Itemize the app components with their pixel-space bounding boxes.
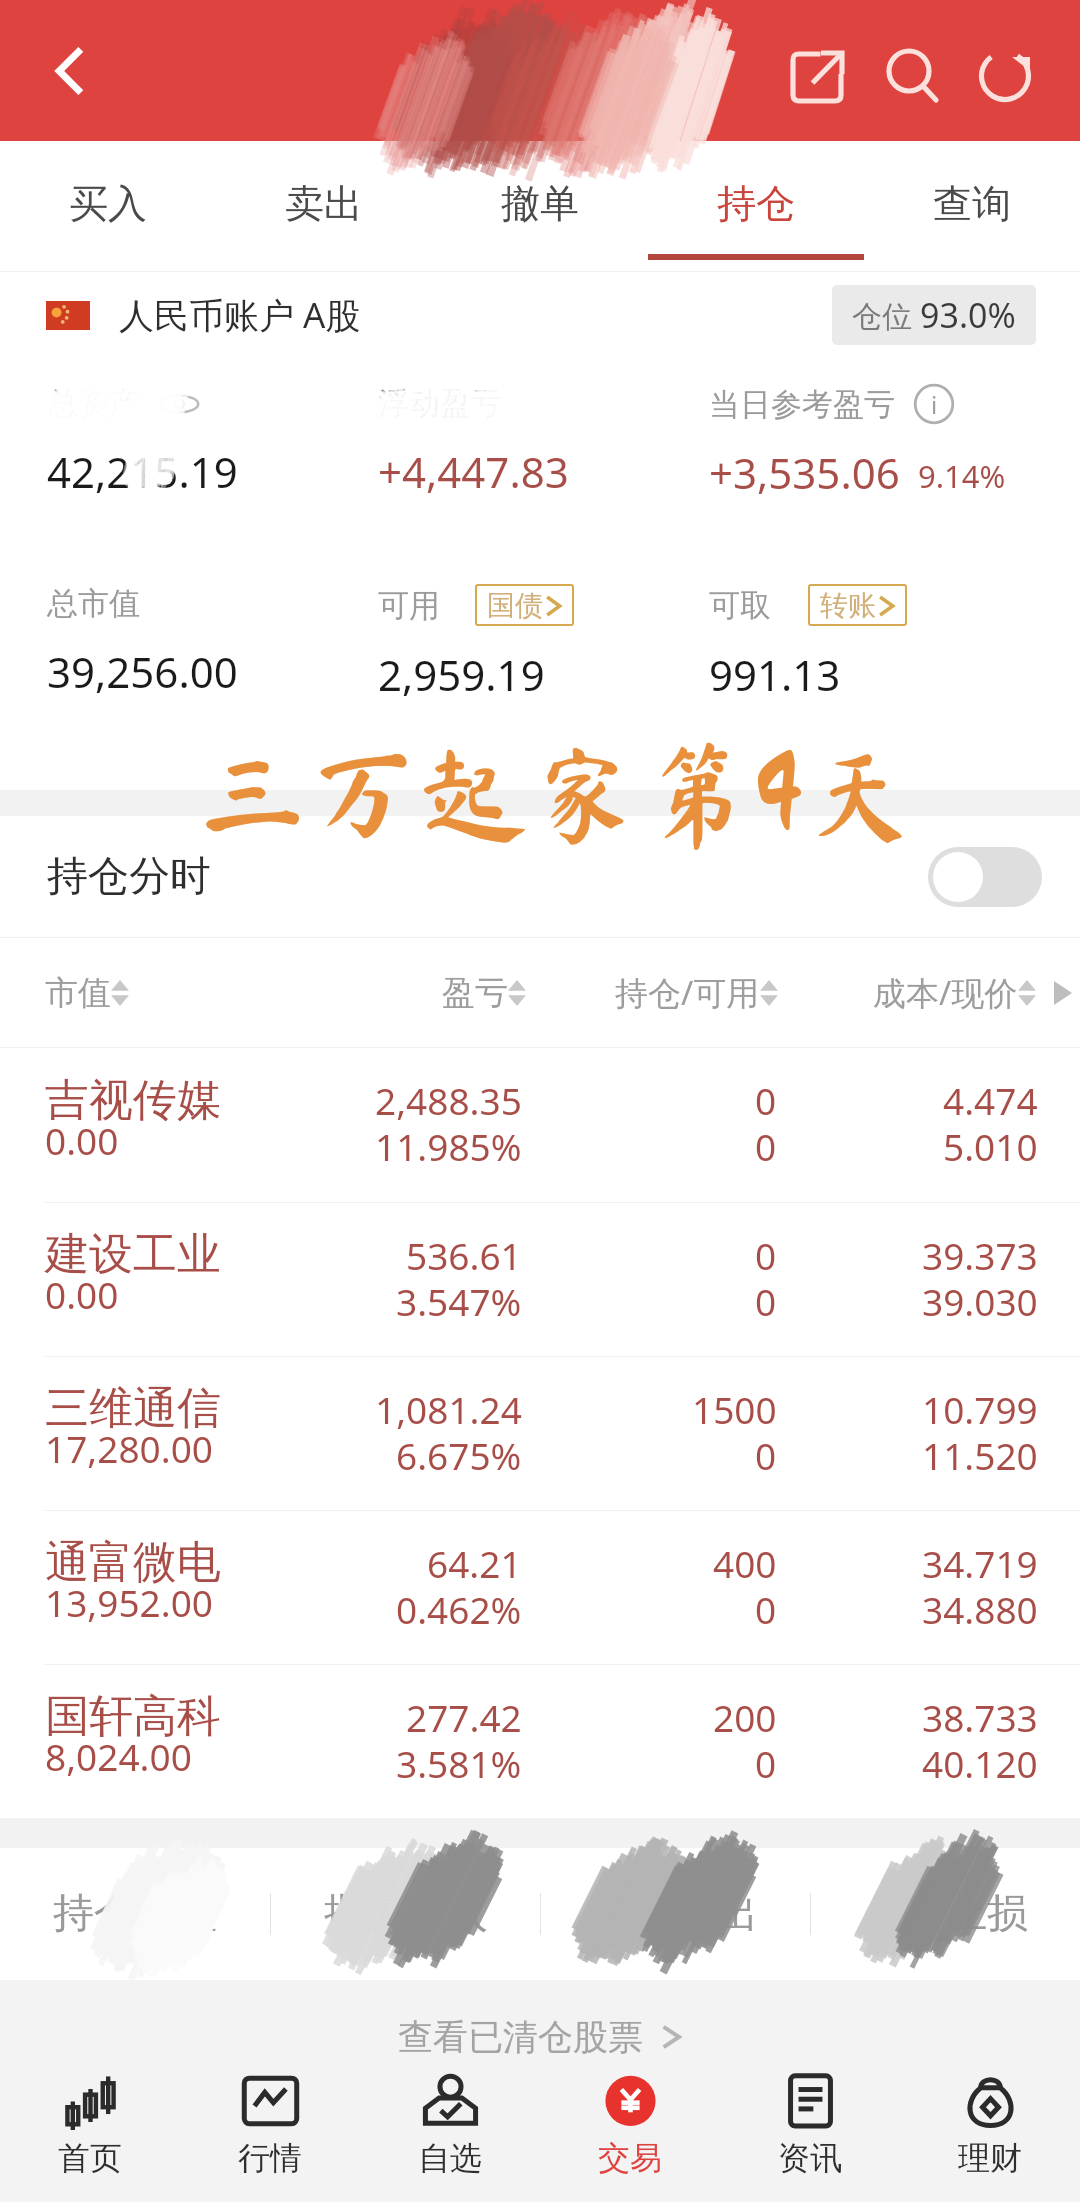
staticText: 38.733 <box>922 1692 1038 1742</box>
staticText: 0 <box>755 1121 777 1171</box>
staticText: 277.42 <box>406 1692 522 1742</box>
button[interactable]: 通富微电 <box>45 1511 1038 1664</box>
staticText: 6.675% <box>396 1430 522 1480</box>
staticText: 盈亏 <box>442 972 508 1014</box>
button[interactable]: 理财 <box>900 2070 1080 2202</box>
staticText: 39,256.00 <box>47 643 238 700</box>
button[interactable]: 批量买入 <box>271 1848 540 1980</box>
button[interactable]: 交易 <box>540 2070 720 2202</box>
staticText: 13,952.00 <box>45 1577 213 1627</box>
staticText: 首页 <box>58 2138 122 2178</box>
button[interactable]: Refresh <box>957 28 1053 124</box>
staticText: 持仓分时 <box>47 851 211 903</box>
staticText: 止盈止损 <box>864 1888 1028 1940</box>
button[interactable]: 建设工业 <box>45 1203 1038 1356</box>
button[interactable]: 查看已清仓股票 <box>0 1980 1080 2094</box>
staticText: 34.719 <box>922 1538 1038 1588</box>
staticText: 3.547% <box>396 1276 522 1326</box>
button[interactable]: 吉视传媒 <box>45 1048 1038 1202</box>
staticText: 0.00 <box>45 1115 119 1165</box>
staticText: 64.21 <box>427 1538 522 1588</box>
button[interactable]: 持仓管理 <box>0 1848 270 1980</box>
staticText: 200 <box>713 1692 777 1742</box>
button[interactable]: 批量卖出 <box>541 1848 810 1980</box>
button[interactable]: 持仓/可用 <box>526 970 778 1015</box>
button[interactable]: Toggle intraday chart <box>928 847 1042 907</box>
button[interactable]: 止盈止损 <box>811 1848 1080 1980</box>
staticText: 资讯 <box>778 2138 842 2178</box>
staticText: 2,488.35 <box>375 1075 522 1125</box>
button[interactable]: Share <box>769 29 865 125</box>
staticText: 查询 <box>933 179 1011 228</box>
staticText: 0 <box>755 1230 777 1280</box>
staticText: 0 <box>755 1276 777 1326</box>
button[interactable]: 查询 <box>864 141 1080 271</box>
staticText: 人民币账户 A股 <box>119 291 361 339</box>
button[interactable]: 买入 <box>0 141 216 271</box>
button[interactable]: 国轩高科 <box>45 1665 1038 1818</box>
staticText: 0 <box>755 1738 777 1788</box>
staticText: 买入 <box>69 179 147 228</box>
button[interactable]: 盈亏 <box>279 972 526 1014</box>
staticText: 17,280.00 <box>45 1423 213 1473</box>
staticText: 市值 <box>45 972 111 1014</box>
staticText: 三万起家第4天 <box>199 740 917 847</box>
staticText: 1500 <box>692 1384 777 1434</box>
staticText: 国债 <box>487 588 543 623</box>
button[interactable]: 市值 <box>45 972 279 1014</box>
staticText: 0.462% <box>396 1584 522 1634</box>
button[interactable]: 首页 <box>0 2070 180 2202</box>
staticText: 42,215.19 <box>47 443 238 500</box>
staticText: 3.581% <box>396 1738 522 1788</box>
button[interactable]: 国债 <box>475 584 574 626</box>
staticText: 11.520 <box>922 1430 1038 1480</box>
staticText: 总市值 <box>47 584 140 623</box>
staticText: 0 <box>755 1584 777 1634</box>
staticText: 34.880 <box>922 1584 1038 1634</box>
button[interactable]: Search <box>865 28 961 124</box>
staticText: +4,447.83 <box>378 443 569 500</box>
staticText: 39.373 <box>922 1230 1038 1280</box>
staticText: 0 <box>755 1430 777 1480</box>
staticText: 10.799 <box>922 1384 1038 1434</box>
button[interactable]: 撤单 <box>432 141 648 271</box>
button[interactable]: 自选 <box>360 2070 540 2202</box>
staticText: 持仓管理 <box>53 1888 217 1940</box>
staticText: 自选 <box>418 2138 482 2178</box>
button[interactable]: 仓位 <box>852 292 1016 338</box>
staticText: 卖出 <box>285 179 363 228</box>
staticText: 建设工业 <box>45 1227 221 1282</box>
staticText: 国轩高科 <box>45 1689 221 1744</box>
staticText: 批量买入 <box>324 1888 488 1940</box>
staticText: 2,959.19 <box>378 646 545 703</box>
staticText: 1,081.24 <box>375 1384 522 1434</box>
staticText: 撤单 <box>501 179 579 228</box>
button[interactable]: 资讯 <box>720 2070 900 2202</box>
staticText: 可用 <box>378 586 440 625</box>
staticText: 5.010 <box>943 1121 1038 1171</box>
button[interactable]: 行情 <box>180 2070 360 2202</box>
staticText: 40.120 <box>922 1738 1038 1788</box>
button[interactable]: 卖出 <box>216 141 432 271</box>
button[interactable]: 三维通信 <box>45 1357 1038 1510</box>
staticText: 吉视传媒 <box>45 1073 221 1128</box>
button[interactable]: 转账 <box>808 584 907 626</box>
staticText: 持仓 <box>717 179 795 228</box>
staticText: 批量卖出 <box>594 1888 758 1940</box>
staticText: 93.0% <box>920 292 1016 338</box>
staticText: 查看已清仓股票 <box>398 2015 643 2059</box>
staticText: 39.030 <box>922 1276 1038 1326</box>
button[interactable]: 持仓 <box>648 141 864 271</box>
staticText: 通富微电 <box>45 1535 221 1590</box>
staticText: 浮动盈亏 <box>378 384 502 423</box>
staticText: 991.13 <box>709 646 841 703</box>
staticText: 仓位 <box>852 295 920 336</box>
staticText: 11.985% <box>375 1121 522 1171</box>
staticText: 当日参考盈亏 <box>709 385 895 424</box>
button[interactable]: 成本/现价 <box>778 970 1036 1015</box>
staticText: 536.61 <box>406 1230 522 1280</box>
staticText: 转账 <box>820 588 876 623</box>
staticText: 0 <box>755 1075 777 1125</box>
button[interactable]: Back <box>22 23 118 119</box>
